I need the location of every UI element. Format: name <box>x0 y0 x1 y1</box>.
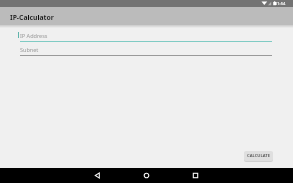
button[interactable] <box>137 168 156 183</box>
staticText: CALCULATE <box>247 153 271 159</box>
staticText: 11:54 <box>275 1 286 6</box>
button[interactable] <box>186 168 205 183</box>
button[interactable]: CALCULATE <box>244 151 273 161</box>
staticText: Subnet <box>20 46 39 53</box>
button[interactable]: Subnet <box>18 44 274 56</box>
staticText: IP Address <box>20 32 48 39</box>
button[interactable] <box>88 168 107 183</box>
staticText: IP-Calculator <box>10 13 54 22</box>
button[interactable]: IP Address <box>18 29 274 43</box>
